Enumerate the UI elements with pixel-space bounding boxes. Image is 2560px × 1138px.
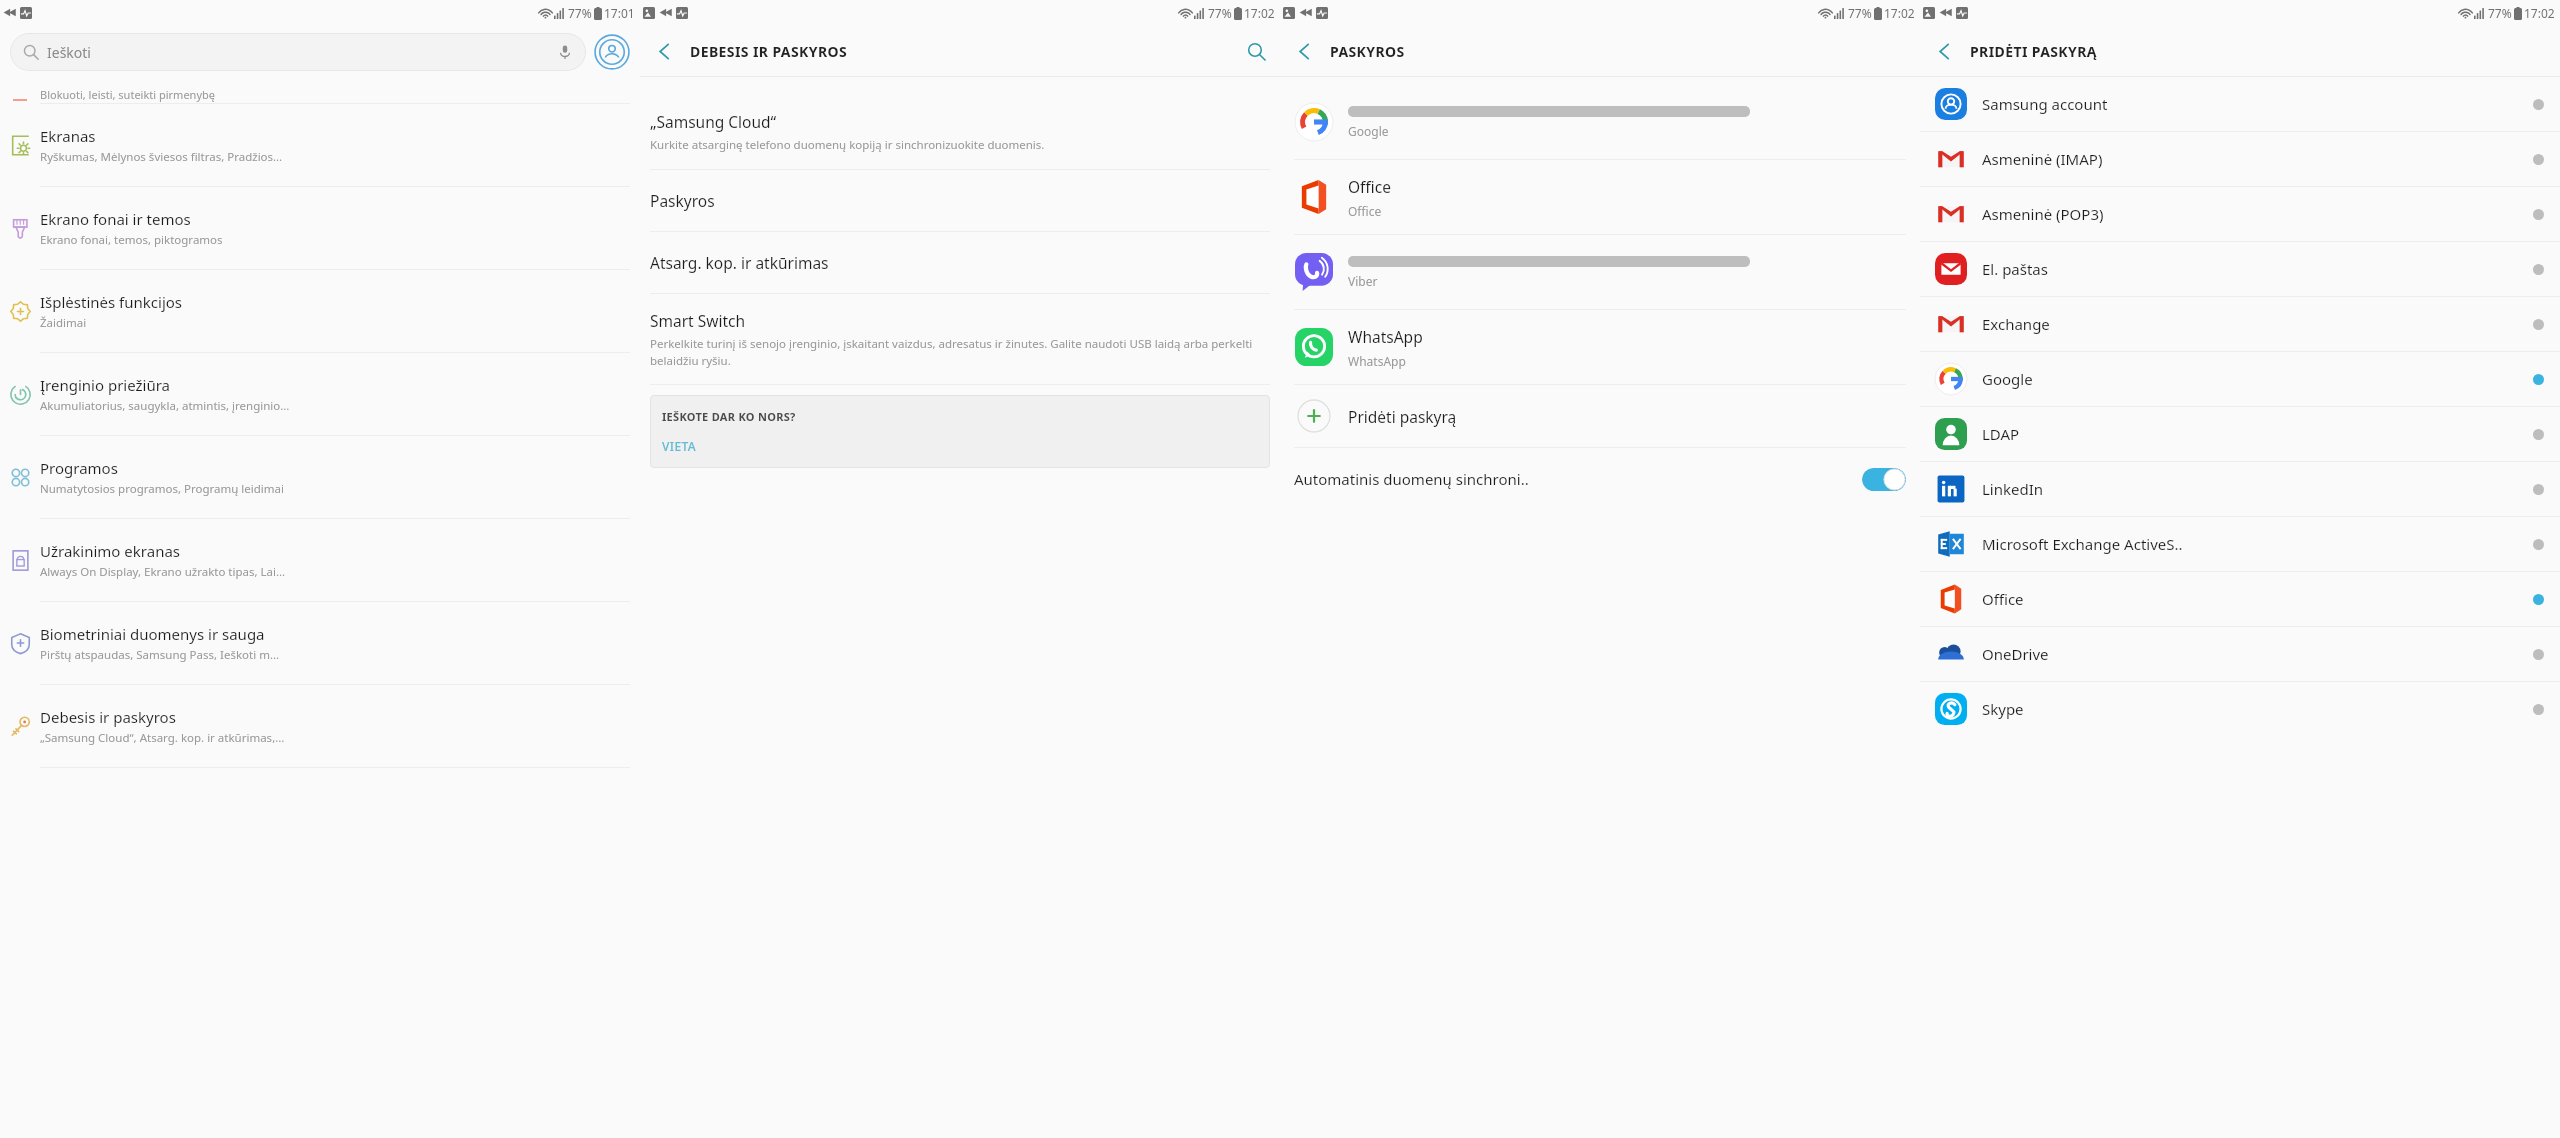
button[interactable]: Auto sync toggle: [1862, 468, 1906, 491]
staticText: Office: [1348, 203, 1382, 219]
staticText: 77%: [568, 5, 592, 21]
staticText: Numatytosios programos, Programų leidima…: [40, 481, 284, 497]
staticText: Ryškumas, Mėlynos šviesos filtras, Pradž…: [40, 149, 283, 165]
staticText: Automatinis duomenų sinchroni..: [1294, 469, 1854, 489]
button[interactable]: Search: [1232, 27, 1280, 75]
staticText: WhatsApp: [1348, 326, 1423, 347]
staticText: Kurkite atsarginę telefono duomenų kopij…: [650, 137, 1045, 153]
staticText: Viber: [1348, 273, 1378, 289]
staticText: Google: [1982, 369, 2516, 389]
button[interactable]: LDAP: [1920, 407, 2560, 461]
button[interactable]: Exchange: [1920, 297, 2560, 351]
staticText: Office: [1982, 589, 2516, 609]
staticText: 17:02: [1884, 5, 1915, 21]
button[interactable]: Back: [1280, 27, 1328, 75]
staticText: WhatsApp: [1348, 353, 1406, 369]
button[interactable]: Asmeninė (POP3): [1920, 187, 2560, 241]
staticText: Blokuoti, leisti, suteikti pirmenybę: [40, 87, 215, 102]
button[interactable]: Biometriniai duomenys ir sauga: [0, 602, 640, 684]
staticText: Akumuliatorius, saugykla, atmintis, įren…: [40, 398, 290, 414]
staticText: Ekranas: [40, 126, 96, 146]
button[interactable]: Google: [1920, 352, 2560, 406]
staticText: Užrakinimo ekranas: [40, 541, 180, 561]
staticText: Always On Display, Ekrano užrakto tipas,…: [40, 564, 286, 580]
staticText: IEŠKOTE DAR KO NORS?: [662, 409, 796, 424]
staticText: Ekrano fonai ir temos: [40, 209, 191, 229]
button[interactable]: Account: [594, 34, 630, 70]
staticText: „Samsung Cloud“, Atsarg. kop. ir atkūrim…: [40, 730, 285, 746]
staticText: Įrenginio priežiūra: [40, 375, 171, 395]
button[interactable]: Asmeninė (IMAP): [1920, 132, 2560, 186]
button[interactable]: Smart Switch: [650, 294, 1270, 384]
staticText: Paskyros: [650, 190, 715, 211]
staticText: LDAP: [1982, 424, 2516, 444]
staticText: LinkedIn: [1982, 479, 2516, 499]
staticText: PRIDĖTI PASKYRĄ: [1970, 42, 2097, 61]
button[interactable]: Microsoft Exchange ActiveS..: [1920, 517, 2560, 571]
staticText: Asmeninė (POP3): [1982, 204, 2516, 224]
button[interactable]: Pridėti paskyrą: [1280, 385, 1920, 447]
staticText: 17:02: [2524, 5, 2555, 21]
staticText: PASKYROS: [1330, 42, 1405, 61]
staticText: Pirštų atspaudas, Samsung Pass, Ieškoti …: [40, 647, 280, 663]
staticText: Smart Switch: [650, 310, 746, 331]
staticText: Google: [1348, 123, 1389, 139]
button[interactable]: El. paštas: [1920, 242, 2560, 296]
button[interactable]: Back: [1920, 27, 1968, 75]
staticText: VIETA: [662, 438, 697, 454]
staticText: Office: [1348, 176, 1391, 197]
staticText: „Samsung Cloud“: [650, 111, 777, 132]
staticText: Atsarg. kop. ir atkūrimas: [650, 252, 829, 273]
staticText: Debesis ir paskyros: [40, 707, 176, 727]
button[interactable]: Ekranas: [0, 104, 640, 186]
staticText: 17:02: [1244, 5, 1275, 21]
button[interactable]: OneDrive: [1920, 627, 2560, 681]
button[interactable]: Debesis ir paskyros: [0, 685, 640, 767]
staticText: Samsung account: [1982, 94, 2516, 114]
staticText: Skype: [1982, 699, 2516, 719]
staticText: Išplėstinės funkcijos: [40, 292, 183, 312]
button[interactable]: Skype: [1920, 682, 2560, 736]
staticText: Pridėti paskyrą: [1348, 406, 1457, 427]
other: Voice search: [557, 44, 573, 60]
staticText: 77%: [2488, 5, 2512, 21]
staticText: DEBESIS IR PASKYROS: [690, 42, 848, 61]
button[interactable]: WhatsApp: [1280, 310, 1920, 384]
button[interactable]: Automatinis duomenų sinchroni..: [1280, 448, 1920, 510]
button[interactable]: Užrakinimo ekranas: [0, 519, 640, 601]
button[interactable]: Viber: [1280, 235, 1920, 309]
button[interactable]: Samsung account: [1920, 77, 2560, 131]
button[interactable]: Google: [1280, 85, 1920, 159]
button[interactable]: Back: [640, 27, 688, 75]
button[interactable]: Ekrano fonai ir temos: [0, 187, 640, 269]
staticText: Biometriniai duomenys ir sauga: [40, 624, 265, 644]
button[interactable]: IEŠKOTE DAR KO NORS?: [650, 395, 1270, 468]
button[interactable]: Ieškoti: [10, 33, 586, 71]
button[interactable]: Išplėstinės funkcijos: [0, 270, 640, 352]
button[interactable]: LinkedIn: [1920, 462, 2560, 516]
staticText: Microsoft Exchange ActiveS..: [1982, 534, 2516, 554]
staticText: El. paštas: [1982, 259, 2516, 279]
staticText: 77%: [1848, 5, 1872, 21]
button[interactable]: Įrenginio priežiūra: [0, 353, 640, 435]
staticText: Programos: [40, 458, 118, 478]
button[interactable]: Programos: [0, 436, 640, 518]
staticText: 17:01: [604, 5, 635, 21]
staticText: Asmeninė (IMAP): [1982, 149, 2516, 169]
button[interactable]: Office: [1280, 160, 1920, 234]
button[interactable]: Paskyros: [650, 170, 1270, 231]
staticText: Ieškoti: [47, 43, 91, 62]
button[interactable]: Office: [1920, 572, 2560, 626]
button[interactable]: Atsarg. kop. ir atkūrimas: [650, 232, 1270, 293]
staticText: 77%: [1208, 5, 1232, 21]
staticText: Exchange: [1982, 314, 2516, 334]
staticText: Žaidimai: [40, 315, 87, 331]
staticText: Ekrano fonai, temos, piktogramos: [40, 232, 223, 248]
staticText: OneDrive: [1982, 644, 2516, 664]
button[interactable]: „Samsung Cloud“: [650, 95, 1270, 169]
staticText: Perkelkite turinį iš senojo įrenginio, į…: [650, 336, 1270, 368]
